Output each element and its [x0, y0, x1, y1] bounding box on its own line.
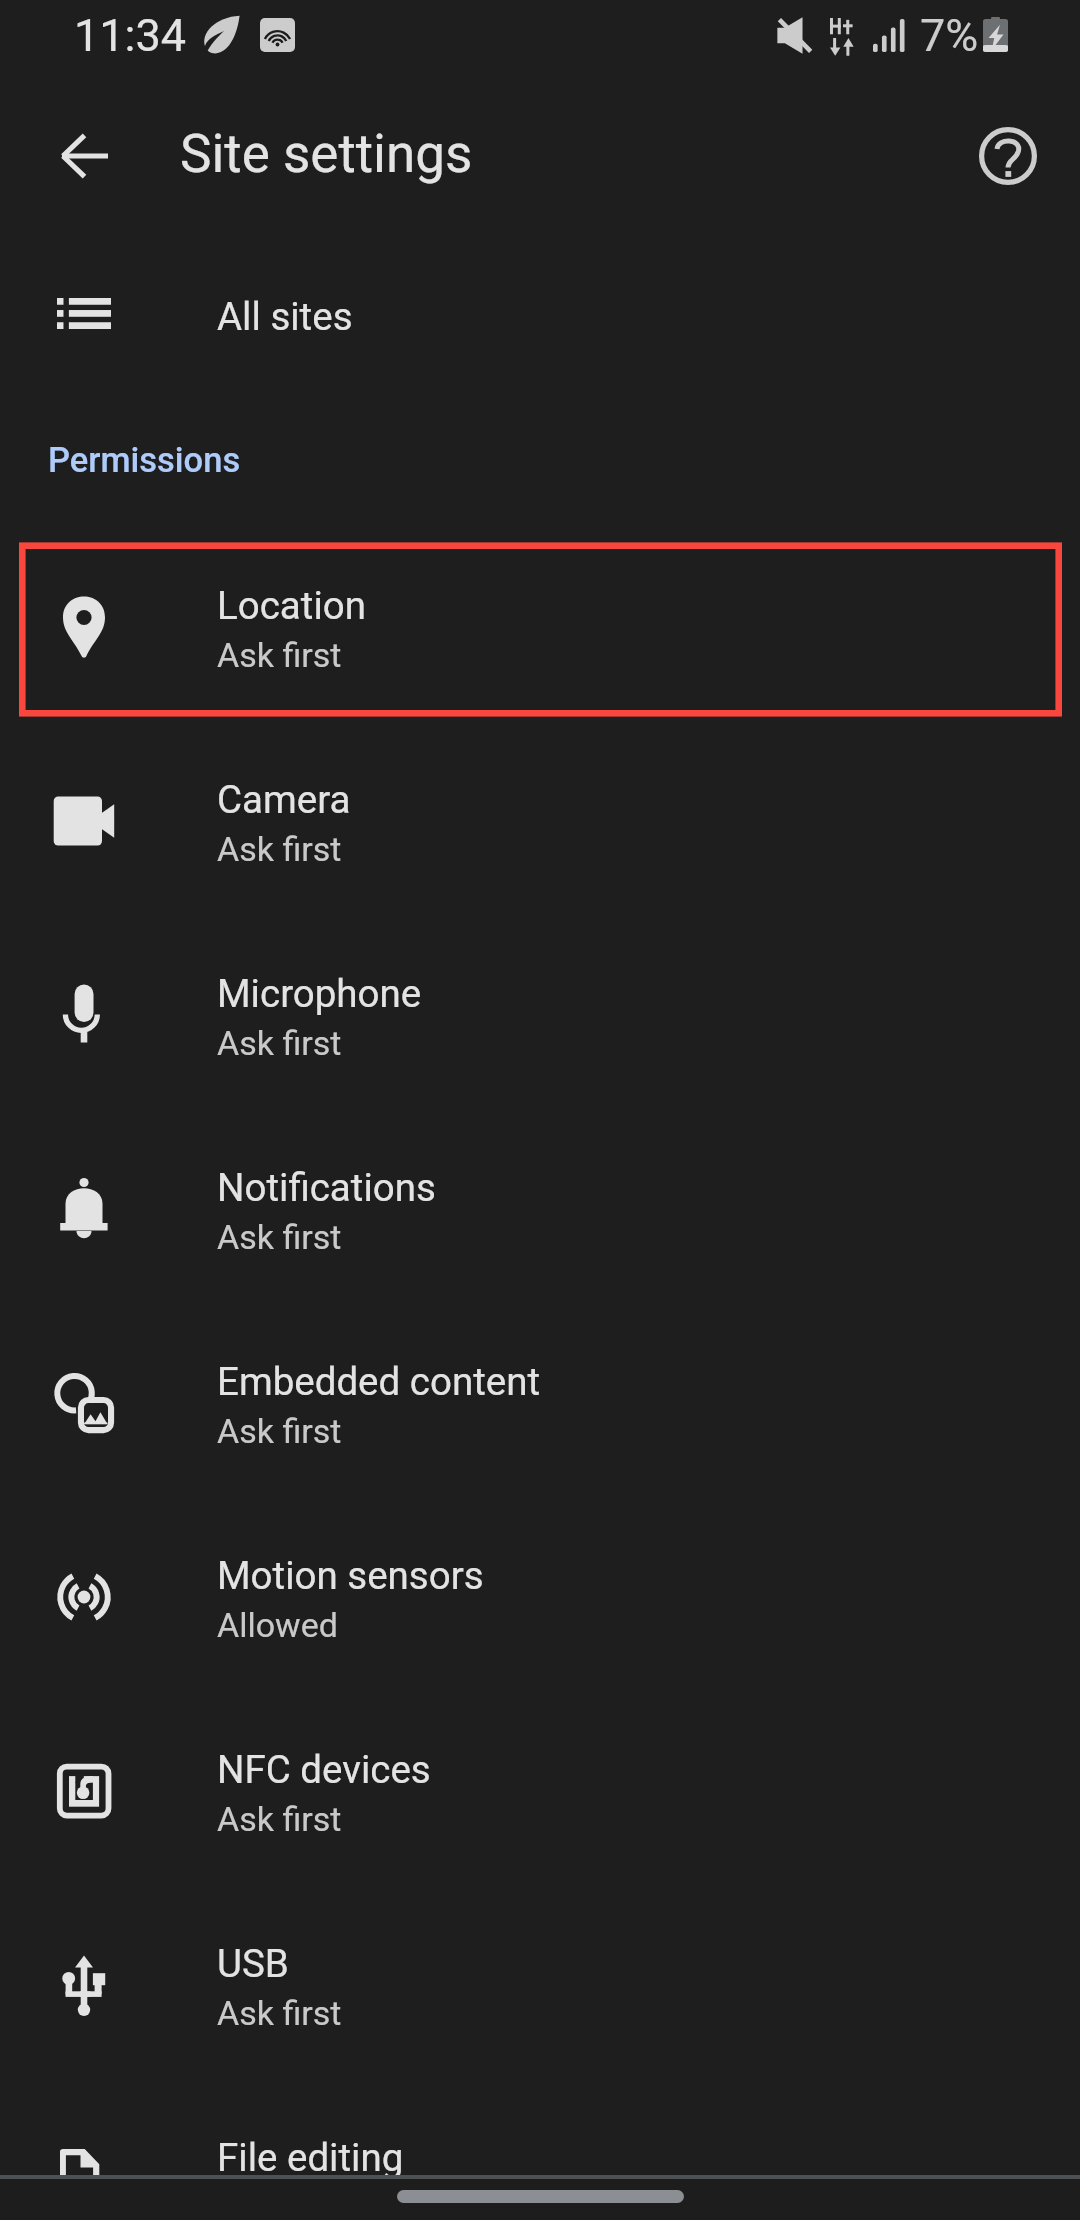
button[interactable]: USB [0, 1900, 1080, 2094]
staticText: Embedded content [217, 1359, 541, 1404]
button[interactable]: Location [0, 542, 1080, 736]
staticText: Ask first [217, 1217, 342, 1257]
staticText: Motion sensors [217, 1553, 484, 1598]
button[interactable]: NFC devices [0, 1706, 1080, 1900]
button[interactable]: Microphone [0, 930, 1080, 1124]
staticText: Camera [217, 777, 351, 822]
staticText: Permissions [48, 440, 241, 480]
button[interactable]: Motion sensors [0, 1512, 1080, 1706]
staticText: File editing [217, 2135, 404, 2180]
button[interactable]: Camera [0, 736, 1080, 930]
button[interactable]: Help and feedback [960, 108, 1056, 204]
staticText: Notifications [217, 1165, 436, 1210]
staticText: 11:34 [74, 9, 187, 62]
button[interactable]: Embedded content [0, 1318, 1080, 1512]
staticText: Ask first [217, 1993, 342, 2033]
staticText: Ask first [217, 1799, 342, 1839]
staticText: Site settings [180, 123, 473, 185]
staticText: Ask first [217, 635, 342, 675]
staticText: Ask first [217, 1023, 342, 1063]
staticText: All sites [217, 294, 353, 339]
staticText: 7% [920, 9, 979, 62]
button[interactable]: File editing [0, 2094, 1080, 2175]
staticText: Ask first [217, 1411, 342, 1451]
button[interactable]: Navigate up [36, 108, 132, 204]
staticText: Location [217, 583, 366, 628]
button[interactable]: All sites [0, 252, 1080, 380]
staticText: Microphone [217, 971, 422, 1016]
staticText: Allowed [217, 1605, 338, 1645]
staticText: USB [217, 1941, 289, 1986]
staticText: NFC devices [217, 1747, 431, 1792]
button[interactable]: Notifications [0, 1124, 1080, 1318]
staticText: Ask first [217, 829, 342, 869]
